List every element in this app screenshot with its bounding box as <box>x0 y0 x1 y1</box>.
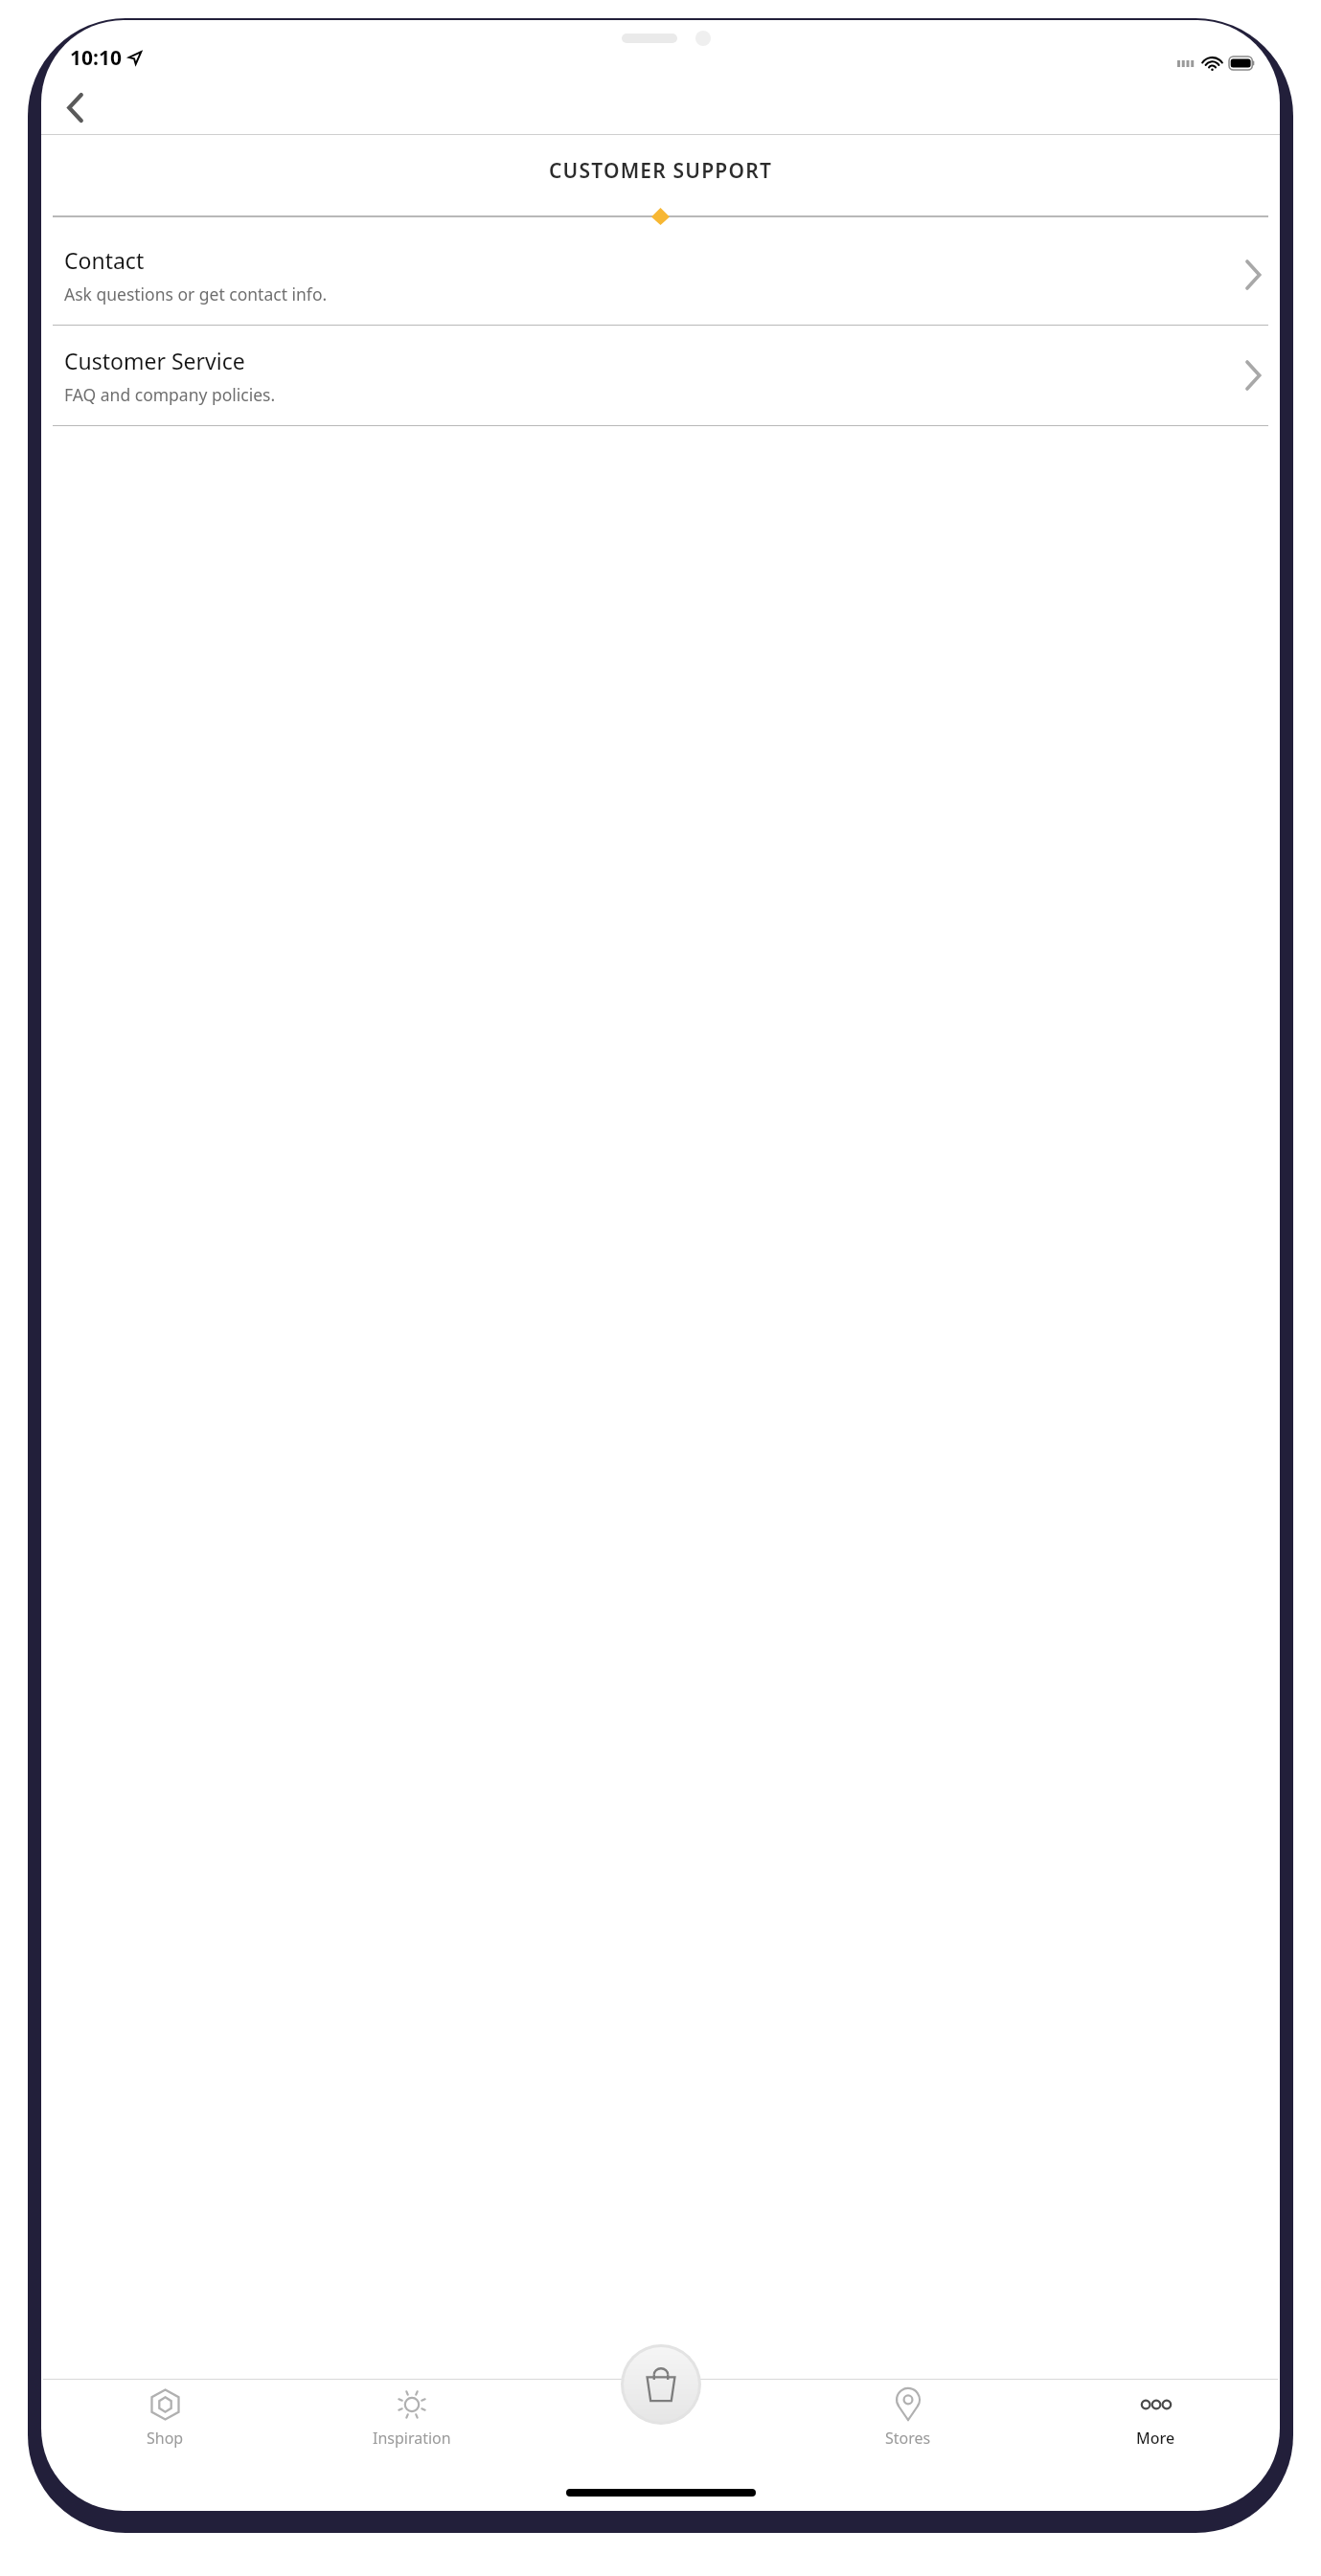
staticText: More <box>1136 2428 1175 2449</box>
button[interactable]: Back <box>49 81 101 133</box>
staticText: Stores <box>885 2428 931 2449</box>
button[interactable]: Shop <box>41 2388 288 2471</box>
staticText: Ask questions or get contact info. <box>64 282 328 305</box>
button[interactable]: Stores <box>784 2388 1032 2471</box>
button[interactable]: Inspiration <box>288 2388 535 2471</box>
button[interactable]: Contact <box>41 225 1280 325</box>
staticText: 10:10 <box>70 44 122 72</box>
staticText: FAQ and company policies. <box>64 383 276 406</box>
staticText: Shop <box>147 2428 184 2449</box>
staticText: Contact <box>64 245 145 275</box>
button[interactable]: Customer Service <box>41 326 1280 425</box>
staticText: CUSTOMER SUPPORT <box>41 157 1280 185</box>
staticText: Customer Service <box>64 346 245 375</box>
button[interactable]: Shopping bag <box>624 2347 698 2422</box>
button[interactable]: More <box>1032 2388 1280 2471</box>
staticText: Inspiration <box>373 2428 451 2449</box>
